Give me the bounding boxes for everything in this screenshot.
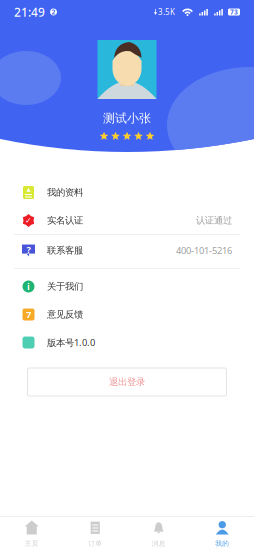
- staticText: 400-101-5216: [176, 244, 232, 257]
- staticText: 版本号1.0.0: [47, 336, 95, 349]
- staticText: 意见反馈: [47, 309, 83, 320]
- staticText: 关于我们: [47, 281, 83, 292]
- staticText: 7: [26, 308, 31, 321]
- staticText: 退出登录: [109, 376, 145, 388]
- button[interactable]: 我的: [190, 516, 254, 550]
- staticText: 测试小张: [103, 111, 151, 126]
- staticText: 我的资料: [47, 187, 83, 198]
- button[interactable]: i: [0, 273, 254, 301]
- staticText: 我的: [215, 539, 229, 548]
- staticText: 实名认证: [47, 215, 83, 226]
- staticText: 联系客服: [47, 245, 83, 256]
- button[interactable]: 订单: [63, 516, 127, 550]
- button[interactable]: ✓: [0, 207, 254, 235]
- staticText: ✓: [25, 216, 32, 225]
- staticText: 2: [51, 8, 55, 16]
- button[interactable]: 我的资料: [0, 179, 254, 207]
- staticText: ?: [26, 243, 30, 256]
- staticText: 消息: [152, 539, 166, 548]
- button[interactable]: 消息: [127, 516, 190, 550]
- button[interactable]: 7: [0, 301, 254, 329]
- button[interactable]: 退出登录: [27, 368, 226, 396]
- staticText: 订单: [88, 539, 102, 548]
- button[interactable]: 主页: [0, 516, 63, 550]
- staticText: i: [27, 280, 30, 293]
- staticText: 21:49: [14, 4, 45, 20]
- staticText: 认证通过: [196, 215, 232, 226]
- button[interactable]: 版本号1.0.0: [0, 329, 254, 357]
- staticText: 主页: [25, 539, 39, 548]
- staticText: 73: [230, 8, 238, 16]
- staticText: 3.5K: [158, 7, 175, 17]
- button[interactable]: ?: [0, 235, 254, 269]
